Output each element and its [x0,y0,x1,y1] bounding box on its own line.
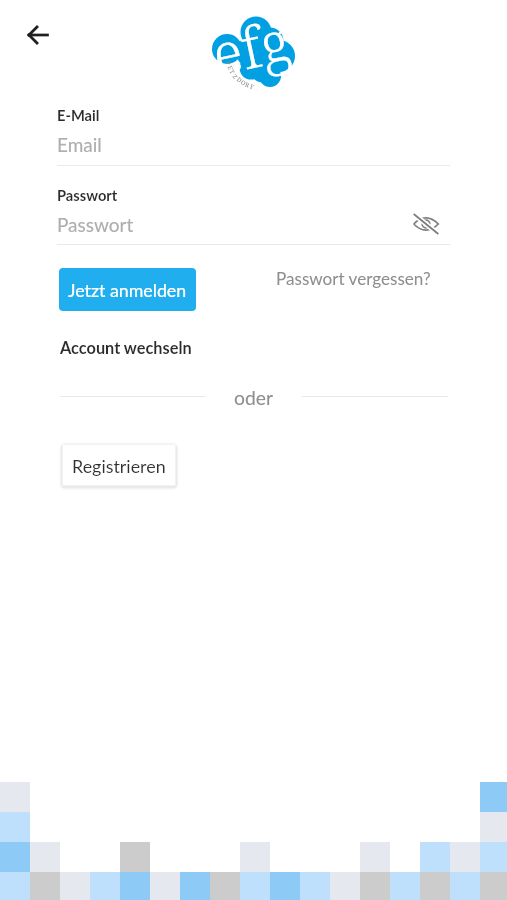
staticText: D [235,75,244,85]
staticText: Z [231,73,239,81]
button[interactable]: Show password [412,210,440,238]
staticText: efg [205,1,297,91]
button[interactable]: Jetzt anmelden [59,268,196,311]
staticText: P [224,60,232,66]
button[interactable]: Back [14,11,62,59]
staticText: T [227,68,236,76]
staticText: R [244,80,250,89]
staticText: E [225,65,234,71]
staticText: oder [234,386,273,409]
button[interactable]: Account wechseln [60,338,192,358]
staticText: F [249,83,255,91]
staticText: Passwort [57,186,118,204]
staticText: Passwort vergessen? [276,268,431,289]
staticText: Email [57,133,102,156]
staticText: O [239,78,248,88]
button[interactable]: Registrieren [62,444,176,486]
button[interactable]: Passwort vergessen? [265,258,441,298]
staticText: Jetzt anmelden [68,279,187,300]
staticText: Account wechseln [60,338,192,358]
staticText: Registrieren [72,455,166,476]
staticText: E-Mail [57,106,100,124]
staticText: Passwort [57,213,134,236]
